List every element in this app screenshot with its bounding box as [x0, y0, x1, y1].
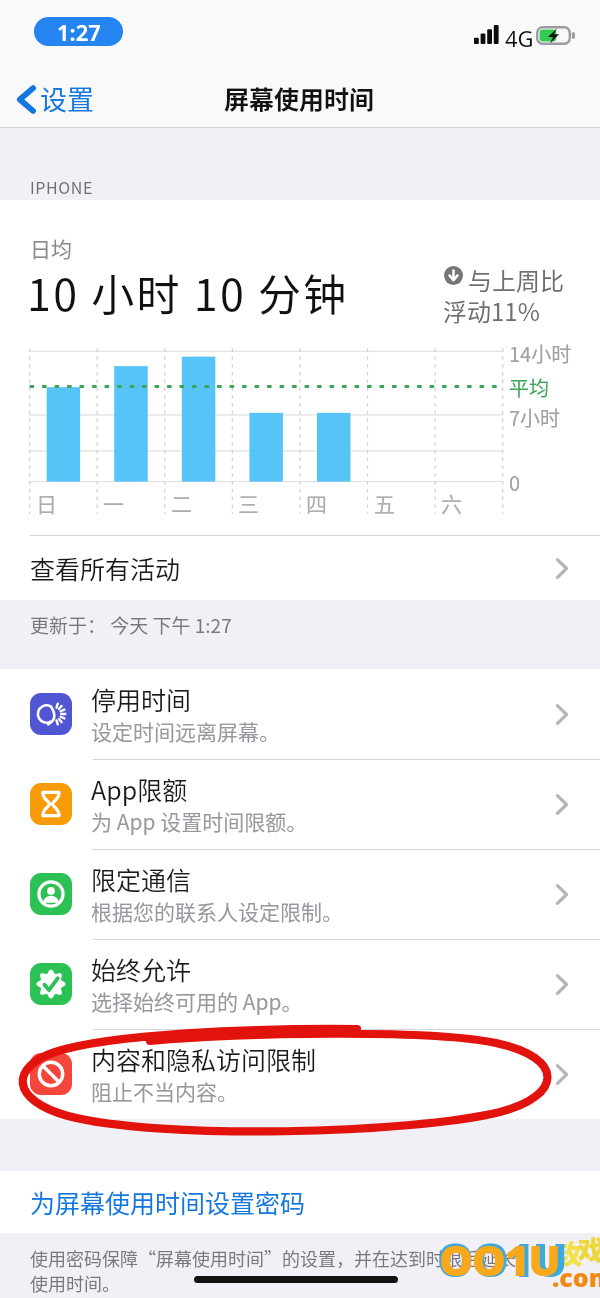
- button[interactable]: 返回设置: [15, 80, 94, 119]
- staticText: App限额: [91, 771, 188, 807]
- staticText: 日均: [30, 233, 72, 263]
- staticText: 六: [441, 488, 462, 518]
- staticText: 内容和隐私访问限制: [91, 1041, 317, 1077]
- staticText: 为 App 设置时间限额。: [91, 806, 308, 836]
- button[interactable]: 内容和隐私访问限制: [0, 1029, 600, 1119]
- staticText: 14小时: [509, 339, 572, 368]
- staticText: 停用时间: [91, 681, 192, 717]
- staticText: 使用密码保障“屏幕使用时间”的设置，并在达到时限后延长 使用时间。: [30, 1245, 516, 1296]
- staticText: 根据您的联系人设定限制。: [91, 896, 343, 926]
- staticText: .com: [552, 1260, 600, 1294]
- staticText: 浮动11%: [443, 293, 540, 328]
- staticText: OO1U: [439, 1230, 560, 1289]
- staticText: 二: [171, 488, 192, 518]
- staticText: 1:27: [57, 17, 101, 46]
- staticText: 选择始终可用的 App。: [91, 986, 303, 1016]
- staticText: 四: [306, 488, 327, 518]
- button[interactable]: App限额: [0, 759, 600, 849]
- staticText: 10 小时 10 分钟: [27, 261, 349, 323]
- staticText: 4G: [505, 23, 534, 53]
- staticText: 攻: [556, 1234, 583, 1272]
- staticText: 设定时间远离屏幕。: [91, 716, 280, 746]
- button[interactable]: 限定通信: [0, 849, 600, 939]
- staticText: 三: [238, 488, 259, 518]
- button[interactable]: 停用时间: [0, 669, 600, 759]
- staticText: 0: [509, 468, 521, 497]
- staticText: 为屏幕使用时间设置密码: [30, 1184, 306, 1220]
- staticText: IPHONE: [30, 175, 93, 198]
- staticText: 始终允许: [91, 951, 192, 987]
- staticText: OO1U: [437, 1228, 567, 1291]
- staticText: 戏: [578, 1230, 600, 1268]
- staticText: 五: [374, 488, 395, 518]
- staticText: 一: [103, 488, 124, 518]
- staticText: 7小时: [509, 403, 561, 432]
- staticText: 屏幕使用时间: [224, 80, 375, 116]
- staticText: 与上周比: [468, 262, 564, 297]
- staticText: 限定通信: [91, 861, 192, 897]
- staticText: 阻止不当内容。: [91, 1076, 238, 1106]
- staticText: 查看所有活动: [30, 550, 556, 586]
- button[interactable]: 查看所有活动: [0, 536, 600, 600]
- button[interactable]: 为屏幕使用时间设置密码: [0, 1171, 600, 1233]
- staticText: 平均: [509, 373, 549, 402]
- button[interactable]: 始终允许: [0, 939, 600, 1029]
- staticText: 设置: [40, 79, 94, 118]
- staticText: 日: [36, 488, 57, 518]
- staticText: 更新于： 今天 下午 1:27: [30, 611, 232, 639]
